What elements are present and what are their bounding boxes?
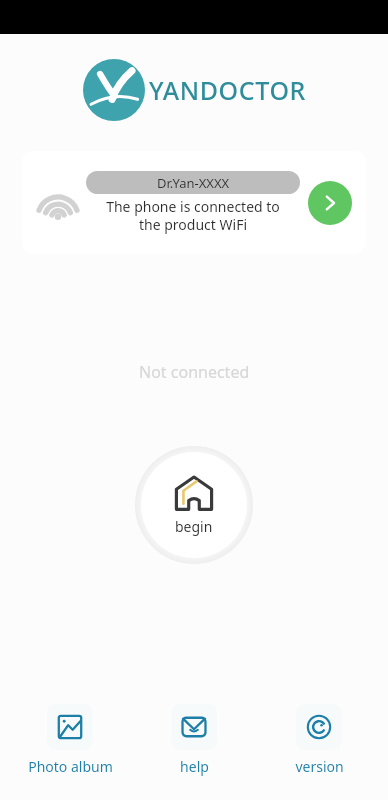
staticText: version xyxy=(295,757,344,776)
button[interactable]: version xyxy=(264,702,374,778)
staticText: Photo album xyxy=(28,757,113,776)
button[interactable]: Photo album xyxy=(15,702,125,778)
button[interactable]: help xyxy=(139,702,249,778)
button[interactable]: Connect xyxy=(308,181,352,225)
staticText: YANDOCTOR xyxy=(149,73,306,107)
staticText: begin xyxy=(175,517,213,536)
button[interactable]: Dr.Yan-XXXX xyxy=(22,151,366,254)
staticText: Dr.Yan-XXXX xyxy=(157,174,230,192)
staticText: Not connected xyxy=(139,361,250,383)
button[interactable]: begin xyxy=(141,452,247,558)
staticText: help xyxy=(180,757,209,776)
staticText: The phone is connected to the product Wi… xyxy=(106,197,280,234)
